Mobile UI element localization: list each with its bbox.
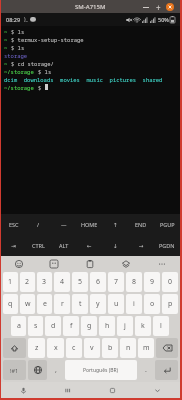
button[interactable]: !#1 [3,360,26,380]
button[interactable]: HOME [76,214,102,235]
button[interactable]: Clipboard [72,256,108,271]
staticText: w [25,299,31,309]
staticText: 2 [25,277,30,287]
staticText: x [54,343,58,353]
button[interactable]: Home [90,382,135,398]
staticText: v [90,343,94,353]
button[interactable]: Stickers [36,256,72,271]
button[interactable]: p [162,294,178,314]
button[interactable]: j [117,316,133,336]
staticText: y [96,299,100,309]
button[interactable]: ESC [1,214,26,235]
button[interactable]: b [102,338,118,358]
button[interactable]: 5 [72,272,88,292]
staticText: $ ls [11,28,25,35]
button[interactable]: 9 [144,272,160,292]
button[interactable]: ← [76,235,102,256]
staticText: l [160,321,162,331]
button[interactable]: r [54,294,70,314]
button[interactable]: Shift [3,338,26,358]
button[interactable]: l [153,316,169,336]
button[interactable]: f [63,316,79,336]
button[interactable]: 2 [20,272,35,292]
button[interactable]: 1 [3,272,18,292]
button[interactable]: k [135,316,151,336]
button[interactable]: s [28,316,43,336]
button[interactable]: END [128,214,154,235]
button[interactable]: CTRL [26,235,51,256]
button[interactable]: o [144,294,160,314]
button[interactable]: e [37,294,52,314]
button[interactable]: Voice input [1,382,45,398]
button[interactable]: Modes [108,256,144,271]
button[interactable]: More [144,256,180,271]
button[interactable]: 7 [108,272,124,292]
button[interactable]: ↓ [102,235,128,256]
staticText: 9 [150,277,155,287]
button[interactable]: w [20,294,35,314]
button[interactable]: Close [164,1,176,13]
button[interactable]: m [138,338,154,358]
button[interactable]: ↑ [102,214,128,235]
button[interactable]: Enter [155,360,178,380]
button[interactable]: x [47,338,64,358]
button[interactable]: a [11,316,26,336]
staticText: f [70,321,73,331]
button[interactable]: c [66,338,82,358]
button[interactable]: h [99,316,115,336]
button[interactable]: , [49,360,63,380]
staticText: z [35,343,39,353]
button[interactable]: g [81,316,97,336]
button[interactable]: ⇥ [1,235,26,256]
staticText: $ ls [38,68,52,75]
button[interactable]: y [90,294,106,314]
staticText: dcim downloads movies music pictures sha… [4,76,163,83]
button[interactable]: 3 [37,272,52,292]
button[interactable]: z [28,338,45,358]
staticText: m [143,343,150,353]
button[interactable]: Space [65,360,137,380]
staticText: ← [87,243,92,249]
staticText: 3 [42,277,47,287]
button[interactable]: 4 [54,272,70,292]
staticText: ↑ [113,222,118,228]
button[interactable]: → [128,235,154,256]
button[interactable]: Maximize [152,1,164,13]
button[interactable]: / [26,214,51,235]
button[interactable]: v [84,338,100,358]
button[interactable]: Change language [28,360,47,380]
button[interactable]: . [139,360,153,380]
staticText: 08:29 [6,16,21,23]
staticText: ~ [4,28,11,35]
staticText: q [8,299,13,309]
staticText: + [156,2,161,13]
button[interactable]: 6 [90,272,106,292]
button[interactable]: u [108,294,124,314]
button[interactable]: 0 [162,272,178,292]
button[interactable]: PGUP [154,214,180,235]
staticText: d [51,321,56,331]
button[interactable]: t [72,294,88,314]
button[interactable]: q [3,294,18,314]
button[interactable]: Recents [45,382,90,398]
staticText: u [114,299,119,309]
staticText: j [124,321,126,331]
button[interactable]: n [120,338,136,358]
button[interactable]: PGDN [154,235,180,256]
button[interactable]: Backspace [156,338,178,358]
staticText: 50% [158,16,169,23]
staticText: ~ [4,36,11,43]
button[interactable]: 8 [126,272,142,292]
staticText: storage [4,52,28,59]
button[interactable]: Minimize [140,1,152,13]
staticText: c [72,343,76,353]
staticText: , [55,365,57,375]
button[interactable]: Hide keyboard [135,382,180,398]
button[interactable]: d [45,316,61,336]
staticText: k [141,321,145,331]
button[interactable]: ALT [51,235,76,256]
button[interactable]: i [126,294,142,314]
staticText: i [133,299,135,309]
button[interactable]: Emoji [1,256,36,271]
button[interactable]: — [51,214,76,235]
